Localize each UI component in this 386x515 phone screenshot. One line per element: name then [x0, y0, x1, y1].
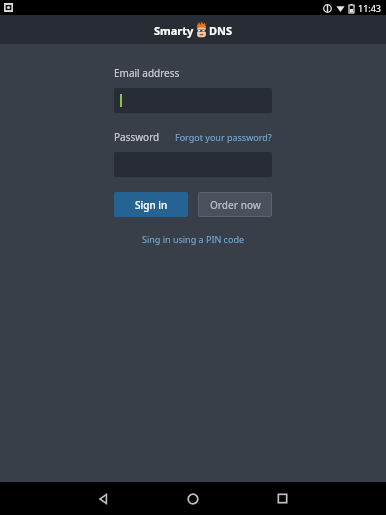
staticText: Smarty — [154, 23, 194, 38]
button[interactable]: Order now — [198, 192, 272, 217]
button[interactable]: Home — [176, 482, 210, 515]
button[interactable]: Back — [87, 482, 121, 515]
staticText: DNS — [209, 23, 233, 38]
button[interactable]: Email address input — [114, 88, 272, 113]
button[interactable]: Forgot your password? — [175, 131, 272, 143]
staticText: 11:43 — [358, 2, 382, 14]
button[interactable]: Recent apps — [265, 482, 299, 515]
staticText: Email address — [114, 66, 180, 80]
button[interactable]: Sing in using a PIN code — [114, 233, 272, 245]
button[interactable]: Sign in — [114, 192, 188, 217]
staticText: Forgot your password? — [175, 131, 272, 143]
staticText: Sing in using a PIN code — [142, 233, 244, 245]
staticText: Password — [114, 130, 160, 144]
staticText: Sign in — [135, 198, 168, 212]
staticText: Order now — [210, 198, 261, 212]
